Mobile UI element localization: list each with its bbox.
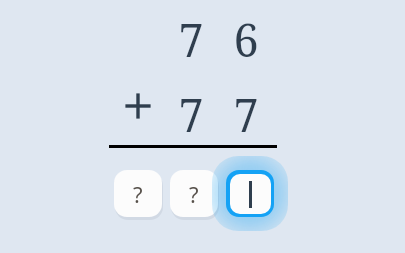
staticText: ? [189,179,199,209]
staticText: 6 [233,9,259,59]
button[interactable]: Unknown digit [170,170,218,217]
staticText: ? [133,179,143,209]
button[interactable]: Answer entry field, selected [226,170,274,217]
staticText: 7 [178,9,204,59]
button[interactable]: Unknown digit [114,170,162,217]
staticText: 7 [178,84,204,134]
staticText: 7 [233,84,259,134]
